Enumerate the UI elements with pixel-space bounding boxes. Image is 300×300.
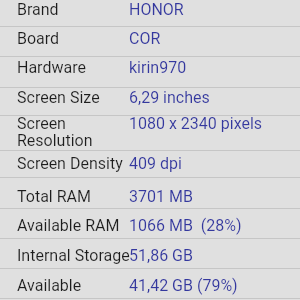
button[interactable] — [0, 116, 300, 150]
button[interactable] — [0, 0, 300, 26]
staticText: Screen — [17, 114, 66, 133]
staticText: Board — [17, 29, 60, 48]
button[interactable] — [0, 209, 300, 238]
staticText: Available RAM — [17, 216, 120, 235]
button[interactable] — [0, 269, 300, 298]
button[interactable] — [0, 27, 300, 56]
staticText: 51,86 GB — [129, 246, 193, 265]
staticText: Hardware — [17, 58, 86, 77]
staticText: Screen Size — [17, 88, 100, 107]
button[interactable] — [0, 57, 300, 87]
staticText: 1066 MB (28%) — [129, 216, 242, 235]
staticText: 409 dpi — [129, 154, 182, 173]
staticText: Screen Density — [17, 154, 123, 173]
staticText: Available — [17, 276, 82, 295]
staticText: 1080 x 2340 pixels — [129, 114, 263, 133]
staticText: Total RAM — [17, 187, 91, 206]
staticText: 41,42 GB (79%) — [129, 276, 238, 295]
staticText: kirin970 — [129, 58, 187, 77]
staticText: HONOR — [129, 0, 184, 19]
staticText: 6,29 inches — [129, 88, 210, 107]
button[interactable] — [0, 239, 300, 268]
button[interactable] — [0, 88, 300, 115]
staticText: Brand — [17, 0, 59, 19]
staticText: Resolution — [17, 131, 93, 150]
button[interactable] — [0, 178, 300, 208]
staticText: Internal Storage — [17, 246, 130, 265]
button[interactable] — [0, 151, 300, 177]
staticText: COR — [129, 29, 161, 48]
staticText: 3701 MB — [129, 187, 193, 206]
